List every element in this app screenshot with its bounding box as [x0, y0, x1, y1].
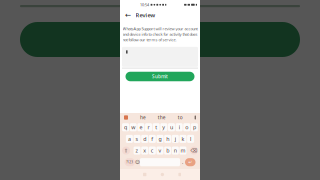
button[interactable]: b — [164, 146, 171, 155]
staticText: ⇧ — [124, 148, 128, 153]
button[interactable]: r — [145, 123, 152, 131]
staticText: n — [174, 147, 177, 154]
button[interactable]: v — [156, 146, 163, 155]
button[interactable]: ⌫ — [190, 146, 198, 155]
button[interactable]: a — [126, 135, 133, 143]
staticText: Review — [135, 11, 155, 19]
button[interactable]: Back — [123, 9, 132, 20]
staticText: Submit — [152, 73, 168, 80]
button[interactable]: c — [149, 146, 156, 155]
staticText: d — [143, 135, 146, 143]
staticText: ☺ — [135, 159, 140, 165]
staticText: g — [158, 135, 161, 143]
staticText: . — [182, 159, 183, 165]
button[interactable]: y — [160, 123, 167, 131]
button[interactable]: p — [191, 123, 198, 131]
staticText: z — [136, 147, 139, 154]
button[interactable]: Submit — [125, 72, 194, 81]
staticText: h — [166, 135, 169, 143]
button[interactable]: q — [122, 123, 129, 131]
staticText: x — [143, 147, 146, 154]
staticText: o — [185, 124, 188, 131]
staticText: a — [128, 135, 131, 143]
staticText: j — [175, 135, 176, 143]
staticText: w — [131, 124, 135, 131]
staticText: s — [136, 135, 139, 143]
staticText: ?123 — [126, 160, 133, 164]
button[interactable]: n — [172, 146, 179, 155]
staticText: u — [170, 124, 173, 131]
staticText: 10:54 — [140, 2, 149, 7]
button[interactable]: t — [153, 123, 160, 131]
button[interactable]: ⇧ — [122, 146, 130, 155]
staticText: t — [155, 124, 157, 131]
staticText: the — [158, 114, 166, 121]
staticText: to — [178, 114, 183, 121]
button[interactable]: x — [141, 146, 148, 155]
staticText: he — [140, 114, 146, 121]
staticText: c — [151, 147, 154, 154]
button[interactable]: h — [164, 135, 171, 143]
staticText: i — [179, 124, 180, 131]
button[interactable]: i — [176, 123, 183, 131]
button[interactable]: f — [149, 135, 156, 143]
staticText: ⌫ — [190, 148, 197, 153]
button[interactable]: w — [130, 123, 137, 131]
button[interactable]: z — [134, 146, 141, 155]
button[interactable]: Emoji — [135, 158, 140, 166]
staticText: y — [162, 124, 165, 131]
button[interactable]: k — [179, 135, 186, 143]
button[interactable]: u — [168, 123, 175, 131]
staticText: k — [181, 135, 184, 143]
button[interactable]: ↵ — [185, 158, 195, 166]
button[interactable]: o — [183, 123, 190, 131]
staticText: b — [166, 147, 169, 154]
staticText: p — [193, 124, 196, 131]
button[interactable]: g — [156, 135, 163, 143]
button[interactable]: j — [172, 135, 179, 143]
staticText: q — [124, 124, 127, 131]
staticText: e — [139, 124, 142, 131]
button[interactable]: e — [137, 123, 144, 131]
button[interactable]: l — [187, 135, 194, 143]
staticText: f — [151, 135, 153, 143]
staticText: r — [147, 124, 149, 131]
staticText: v — [158, 147, 161, 154]
staticText: ← — [125, 11, 131, 19]
button[interactable]: d — [141, 135, 148, 143]
staticText: m — [180, 147, 185, 154]
button[interactable]: m — [179, 146, 186, 155]
button[interactable]: ?123 — [124, 158, 135, 166]
button[interactable]: s — [134, 135, 141, 143]
staticText: l — [190, 135, 191, 143]
staticText: ↵ — [188, 159, 192, 165]
button[interactable]: . — [180, 158, 185, 166]
staticText: WhatsApp Support will review your accoun… — [122, 26, 197, 42]
